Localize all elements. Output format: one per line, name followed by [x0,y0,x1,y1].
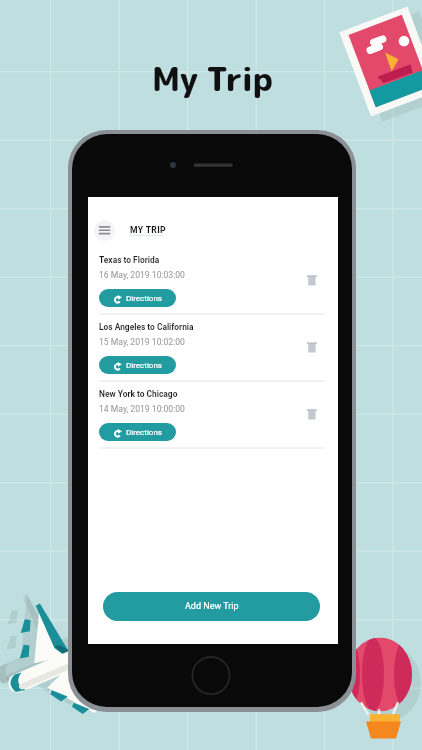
staticText: Directions [126,361,162,370]
staticText: New York to Chicago [99,389,178,399]
staticText: Directions [126,294,162,303]
button[interactable]: Add New Trip [103,592,320,621]
button[interactable]: Directions [99,356,176,374]
button[interactable]: Delete trip [303,338,321,356]
button[interactable]: Open navigation menu [94,220,115,241]
staticText: 14 May, 2019 10:00:00 [99,404,185,414]
button[interactable]: Delete trip [303,405,321,423]
staticText: 16 May, 2019 10:03:00 [99,270,185,280]
staticText: Directions [126,428,162,437]
staticText: Texas to Florida [99,255,160,265]
staticText: Los Angeles to California [99,322,194,332]
staticText: My Trip [152,56,273,102]
staticText: Add New Trip [185,601,239,612]
button[interactable]: Delete trip [303,271,321,289]
button[interactable]: Directions [99,423,176,441]
staticText: 15 May, 2019 10:02:00 [99,337,185,347]
staticText: MY TRIP [130,225,166,235]
button[interactable]: MY TRIP [130,225,166,236]
button[interactable]: Directions [99,289,176,307]
